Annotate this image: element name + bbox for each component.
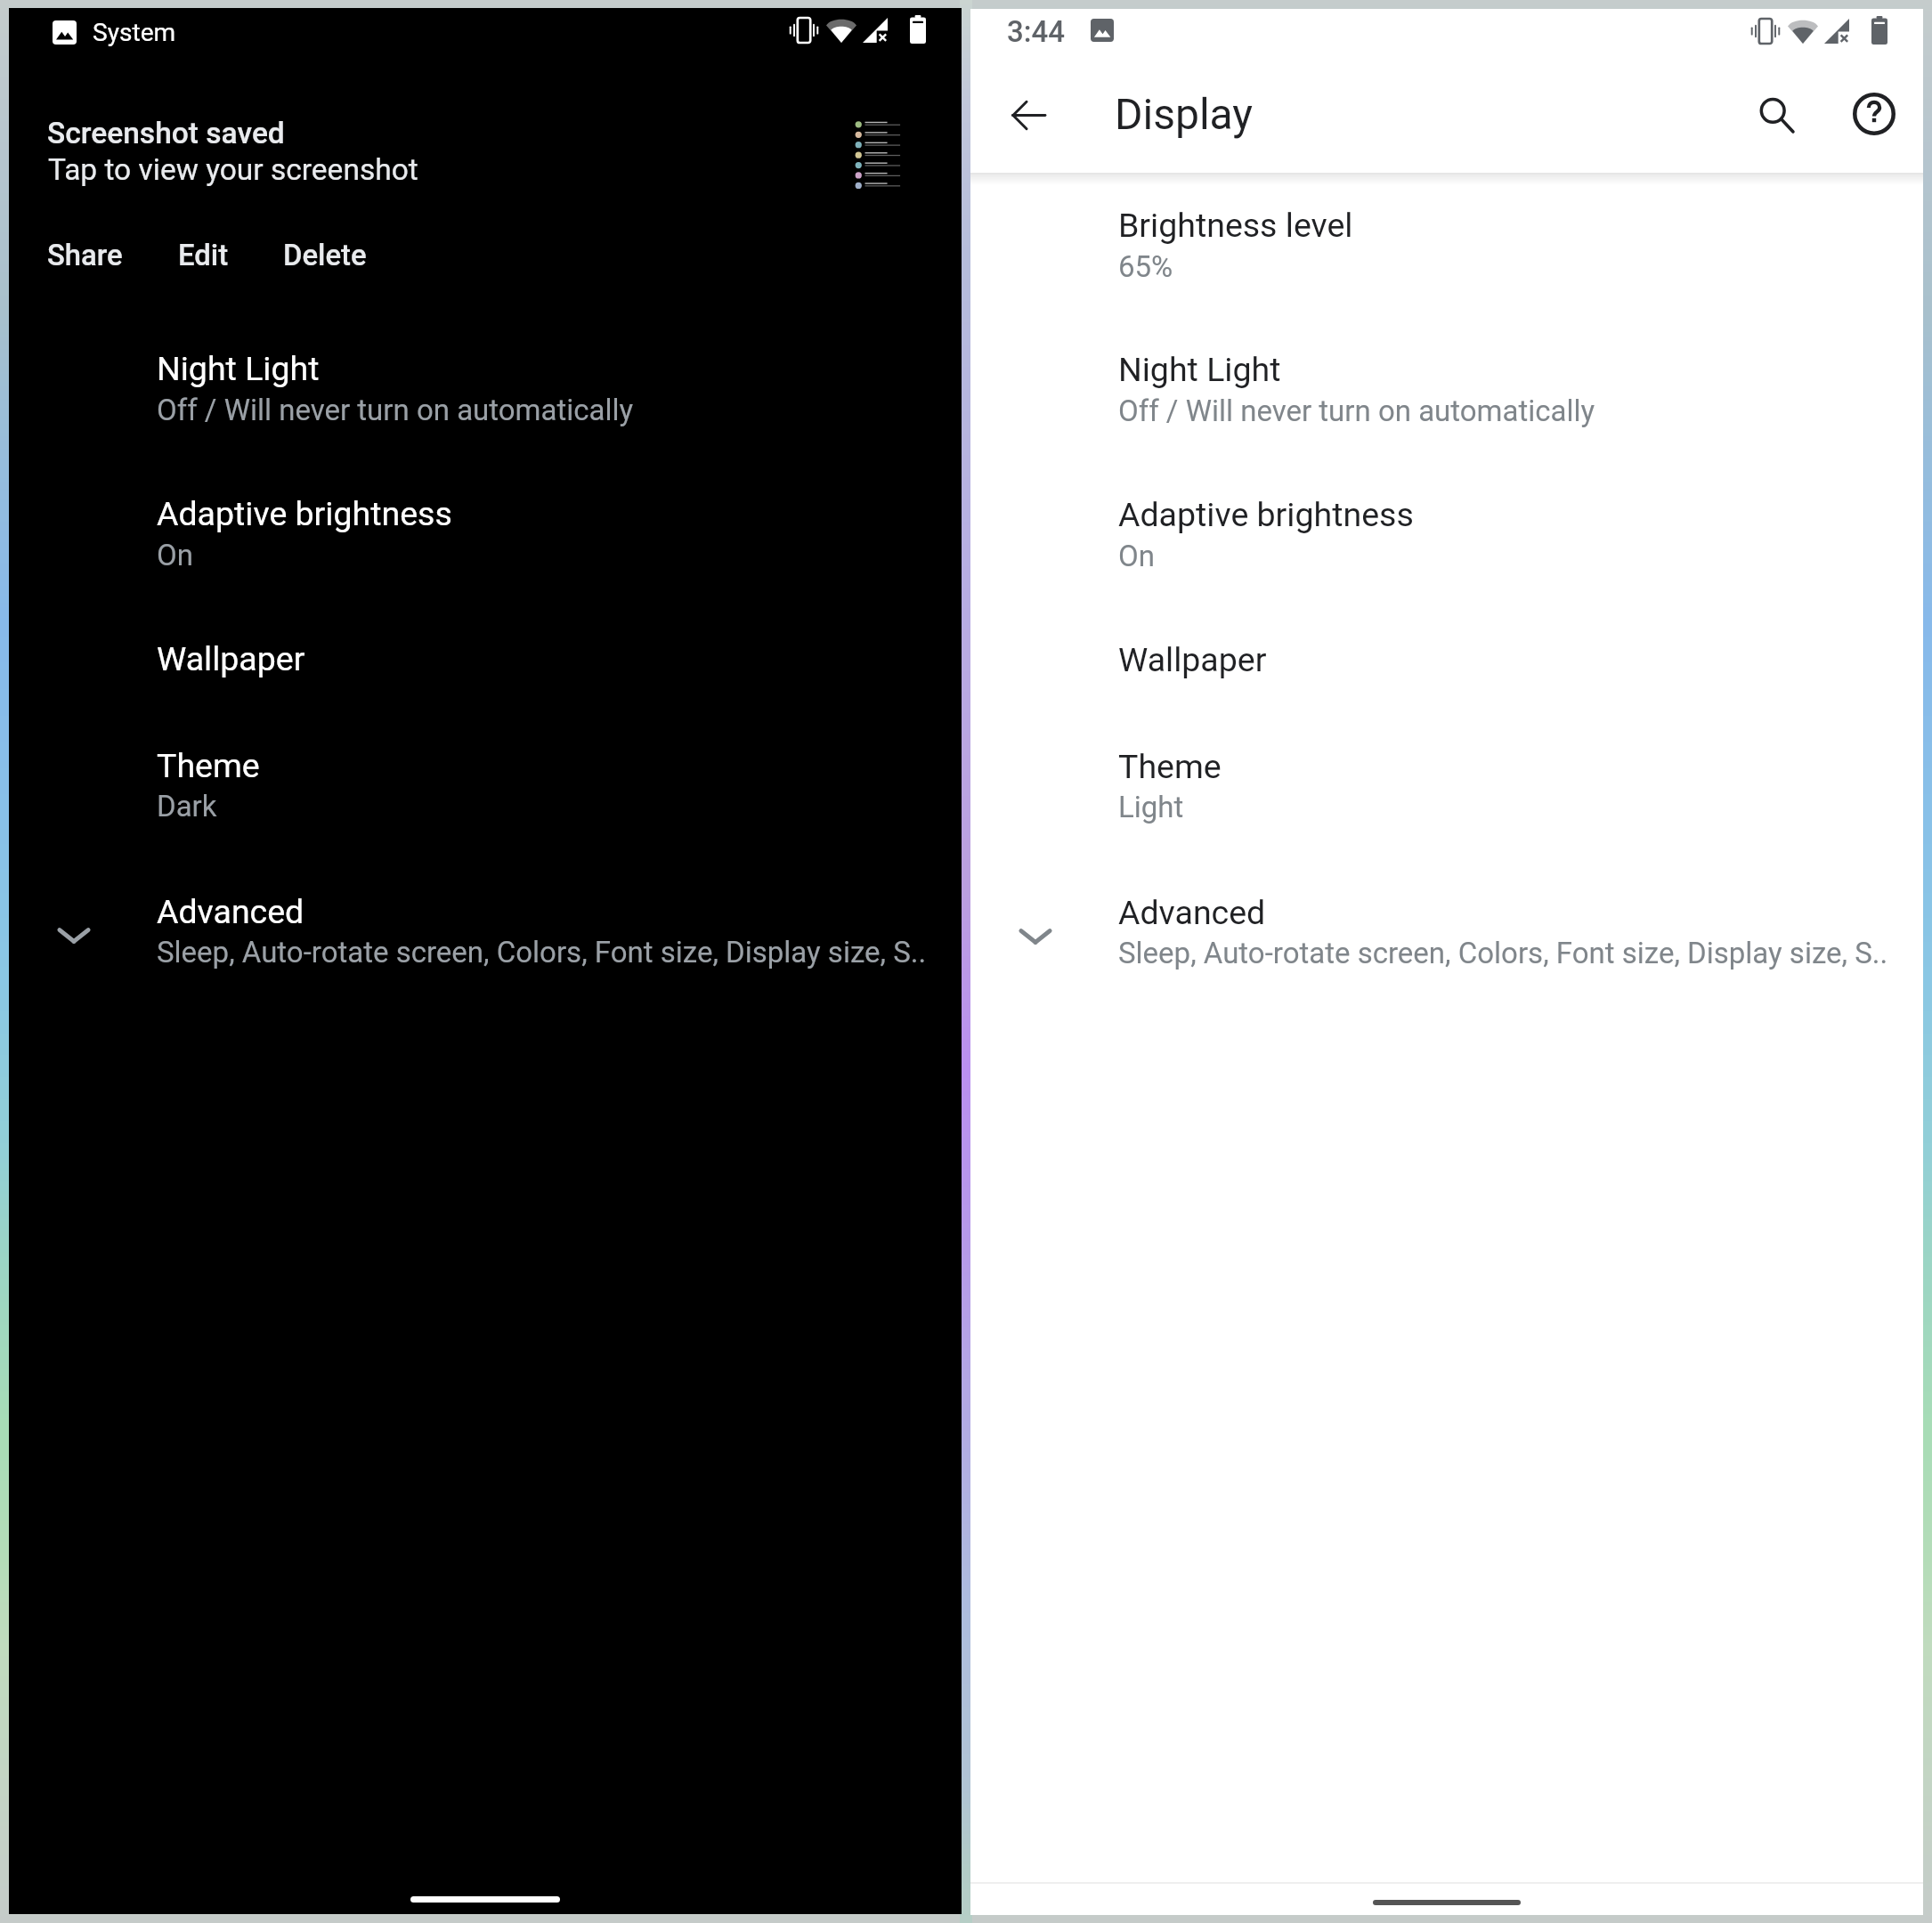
button[interactable] xyxy=(970,609,1923,698)
staticText: Edit xyxy=(178,239,229,272)
staticText: Off / Will never turn on automatically xyxy=(1118,394,1595,428)
staticText: Advanced xyxy=(1118,893,1266,932)
staticText: Wallpaper xyxy=(157,639,305,678)
staticText: 3:44 xyxy=(1007,14,1066,49)
staticText: Delete xyxy=(283,239,367,272)
button[interactable] xyxy=(970,174,1923,296)
staticText: Adaptive brightness xyxy=(157,494,452,533)
staticText: Screenshot saved xyxy=(47,116,285,150)
staticText: Wallpaper xyxy=(1118,640,1267,679)
button[interactable]: Delete xyxy=(264,222,386,289)
button[interactable] xyxy=(970,320,1923,441)
button[interactable] xyxy=(9,861,962,982)
button[interactable]: Expand advanced settings xyxy=(43,905,105,967)
button[interactable]: Screenshot saved. Tap to view your scree… xyxy=(27,101,944,208)
button[interactable] xyxy=(970,464,1923,585)
staticText: Brightness level xyxy=(1118,206,1353,245)
button[interactable]: Share xyxy=(28,222,142,289)
staticText: On xyxy=(157,538,193,572)
staticText: 65% xyxy=(1118,249,1173,284)
staticText: Advanced xyxy=(157,892,304,931)
staticText: Night Light xyxy=(157,349,320,388)
button[interactable] xyxy=(970,716,1923,837)
staticText: Theme xyxy=(157,746,260,785)
staticText: Tap to view your screenshot xyxy=(48,152,418,187)
staticText: Theme xyxy=(1118,747,1222,786)
staticText: Share xyxy=(47,239,123,272)
button[interactable] xyxy=(9,608,962,697)
button[interactable] xyxy=(9,319,962,440)
staticText: Display xyxy=(1115,89,1254,139)
staticText: System xyxy=(93,18,176,47)
button[interactable] xyxy=(9,715,962,836)
staticText: Adaptive brightness xyxy=(1118,495,1414,534)
staticText: Sleep, Auto-rotate screen, Colors, Font … xyxy=(157,935,927,970)
button[interactable] xyxy=(9,463,962,584)
staticText: Dark xyxy=(157,789,217,824)
staticText: Sleep, Auto-rotate screen, Colors, Font … xyxy=(1118,936,1888,970)
staticText: On xyxy=(1118,539,1155,573)
staticText: Off / Will never turn on automatically xyxy=(157,393,634,427)
button[interactable] xyxy=(970,862,1923,983)
button[interactable]: Expand advanced settings xyxy=(1004,905,1067,968)
button[interactable]: Edit xyxy=(158,222,248,289)
button[interactable]: Search xyxy=(1744,83,1808,147)
staticText: Night Light xyxy=(1118,350,1281,389)
button[interactable]: Back xyxy=(996,83,1060,147)
button[interactable]: Help xyxy=(1842,82,1906,146)
staticText: Light xyxy=(1118,790,1184,824)
